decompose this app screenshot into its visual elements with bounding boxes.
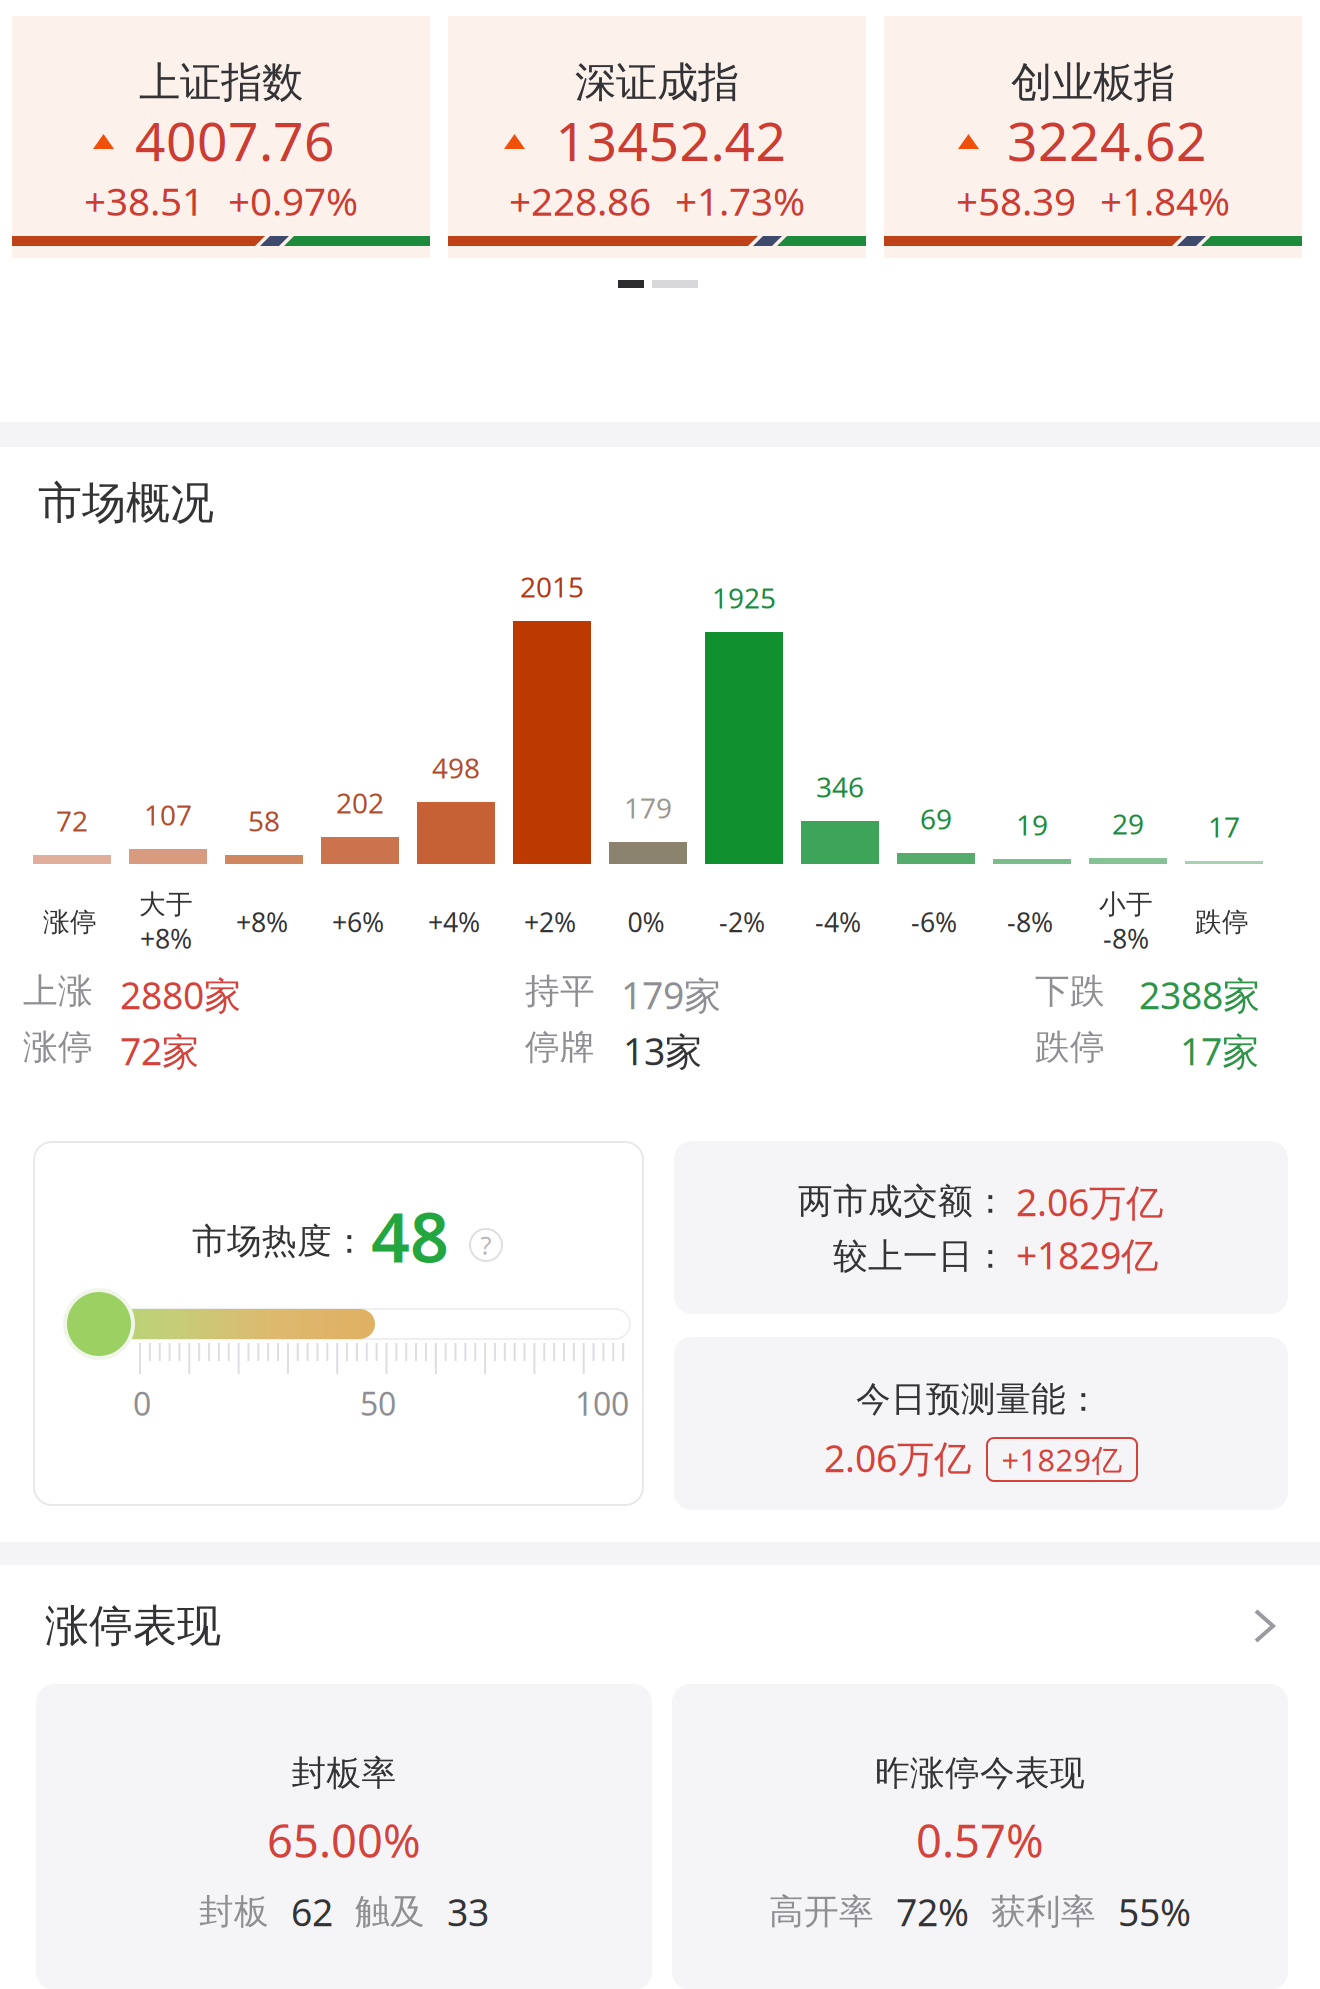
staticText: -2% [719, 904, 765, 940]
staticText: +6% [332, 904, 384, 940]
staticText: 19 [1016, 806, 1048, 843]
staticText: 2.06万亿 [1016, 1177, 1163, 1227]
staticText: ? [480, 1228, 491, 1262]
staticText: 触及 [355, 1890, 425, 1933]
staticText: 上证指数 [139, 57, 303, 108]
staticText: 较上一日： [833, 1235, 1008, 1278]
staticText: 72家 [120, 1026, 199, 1076]
staticText: 179家 [621, 970, 721, 1020]
staticText: 29 [1112, 805, 1144, 842]
staticText: 0 [133, 1382, 151, 1424]
staticText: 13家 [623, 1026, 702, 1076]
staticText: 202 [336, 784, 384, 821]
staticText: -4% [815, 904, 861, 940]
staticText: 高开率 [769, 1890, 874, 1933]
staticText: 346 [816, 768, 864, 805]
staticText: 55% [1118, 1887, 1191, 1937]
staticText: +8% [236, 904, 288, 940]
staticText: 今日预测量能： [856, 1378, 1101, 1421]
staticText: +58.39 [956, 175, 1076, 226]
staticText: 0% [627, 904, 664, 940]
staticText: +1.84% [1100, 175, 1230, 226]
staticText: 62 [291, 1887, 333, 1937]
staticText: 封板 [199, 1890, 269, 1933]
staticText: 69 [920, 800, 952, 837]
staticText: +4% [428, 904, 480, 940]
staticText: 2.06万亿 [824, 1433, 971, 1483]
staticText: 市场热度： [192, 1220, 367, 1263]
button[interactable]: 深证成指 [448, 16, 866, 258]
staticText: 48 [371, 1191, 449, 1281]
staticText: 持平 [525, 970, 595, 1013]
staticText: +1.73% [675, 175, 805, 226]
staticText: 17 [1208, 808, 1240, 845]
staticText: 17家 [1180, 1026, 1259, 1076]
staticText: 深证成指 [575, 57, 739, 108]
staticText: 获利率 [991, 1890, 1096, 1933]
staticText: 33 [447, 1887, 489, 1937]
staticText: 498 [432, 749, 480, 786]
staticText: 65.00% [267, 1810, 421, 1870]
staticText: 跌停 [1195, 906, 1249, 938]
staticText: 72% [896, 1887, 969, 1937]
staticText: 50 [360, 1382, 396, 1424]
staticText: 107 [144, 796, 192, 833]
button[interactable]: 昨涨停今表现 [672, 1684, 1288, 1989]
staticText: 2015 [520, 568, 584, 605]
staticText: 100 [575, 1382, 629, 1424]
staticText: 上涨 [23, 970, 93, 1013]
staticText: +228.86 [509, 175, 651, 226]
staticText: 停牌 [525, 1026, 595, 1069]
button[interactable]: 查看涨停表现 [1248, 1605, 1308, 1665]
staticText: 下跌 [1035, 970, 1105, 1013]
staticText: 跌停 [1035, 1026, 1105, 1069]
staticText: 1925 [712, 579, 776, 616]
staticText: 小于 [1099, 888, 1153, 921]
staticText: 涨停 [23, 1026, 93, 1069]
staticText: 3224.62 [1007, 105, 1207, 176]
staticText: 58 [248, 802, 280, 839]
staticText: 封板率 [291, 1752, 396, 1795]
staticText: 4007.76 [135, 105, 335, 176]
staticText: 市场概况 [38, 476, 214, 530]
staticText: 创业板指 [1011, 57, 1175, 108]
staticText: +38.51 [84, 175, 204, 226]
button[interactable]: 上证指数 [12, 16, 430, 258]
staticText: +8% [140, 921, 192, 956]
staticText: 13452.42 [555, 105, 786, 176]
staticText: -8% [1007, 904, 1053, 940]
staticText: -8% [1103, 921, 1149, 956]
button[interactable]: 创业板指 [884, 16, 1302, 258]
staticText: 昨涨停今表现 [875, 1752, 1085, 1795]
staticText: 大于 [139, 888, 193, 921]
staticText: 2880家 [120, 970, 241, 1020]
staticText: -6% [911, 904, 957, 940]
button[interactable]: 封板率 [36, 1684, 652, 1989]
staticText: +2% [524, 904, 576, 940]
staticText: 179 [624, 789, 672, 826]
staticText: 2388家 [1139, 970, 1260, 1020]
staticText: 72 [56, 802, 88, 839]
staticText: +1829亿 [1016, 1230, 1158, 1280]
staticText: 涨停 [43, 906, 97, 938]
staticText: +1829亿 [1001, 1439, 1122, 1480]
staticText: +0.97% [228, 175, 358, 226]
staticText: 涨停表现 [45, 1599, 221, 1653]
staticText: 两市成交额： [798, 1180, 1008, 1223]
staticText: 0.57% [916, 1810, 1044, 1870]
